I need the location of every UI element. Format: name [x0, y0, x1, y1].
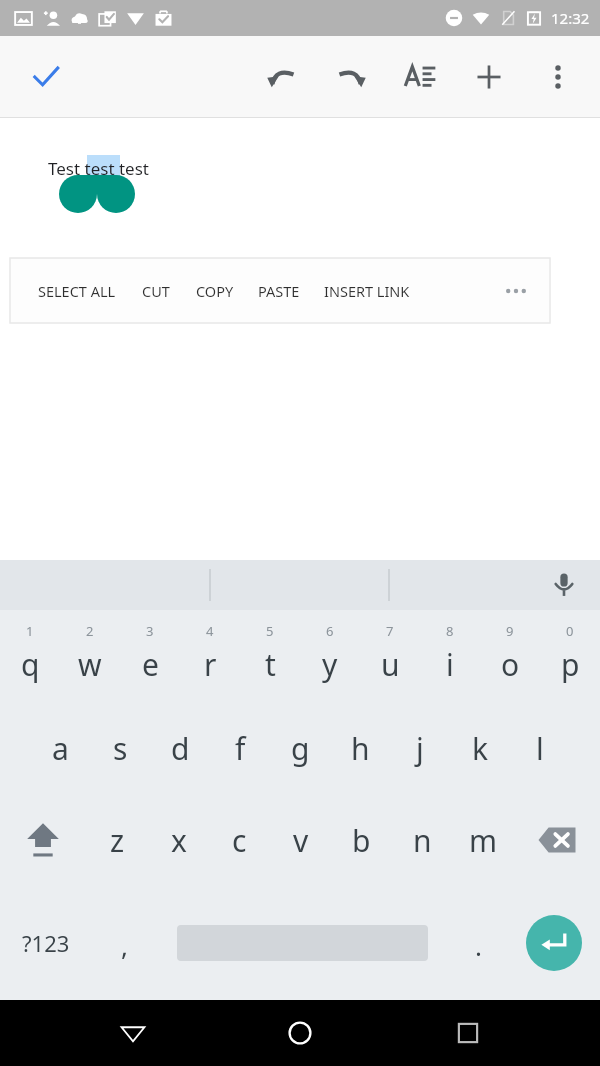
staticText: ?123 — [22, 928, 70, 958]
staticText: 5 — [266, 622, 274, 640]
staticText: s — [113, 728, 128, 769]
button[interactable]: z — [86, 794, 148, 886]
staticText: o — [501, 644, 520, 685]
button[interactable]: COPY — [190, 258, 240, 323]
staticText: SELECT ALL — [38, 281, 116, 301]
button[interactable]: 1 — [0, 610, 60, 702]
button[interactable]: k — [450, 702, 510, 794]
staticText: 9 — [506, 622, 514, 640]
button[interactable]: n — [392, 794, 453, 886]
staticText: i — [446, 644, 454, 685]
staticText: COPY — [196, 281, 234, 301]
staticText: l — [536, 728, 544, 769]
button[interactable]: Voice input — [542, 563, 586, 607]
staticText: 3 — [146, 622, 154, 640]
button[interactable]: 2 — [60, 610, 120, 702]
button[interactable]: , — [92, 886, 156, 1000]
button[interactable]: Redo — [316, 44, 385, 110]
button[interactable]: s — [90, 702, 150, 794]
staticText: p — [561, 644, 580, 685]
staticText: j — [416, 728, 424, 769]
button[interactable]: 5 — [240, 610, 300, 702]
button[interactable]: d — [150, 702, 210, 794]
staticText: v — [293, 820, 309, 861]
staticText: 1 — [26, 622, 34, 640]
staticText: z — [110, 820, 125, 861]
staticText: PASTE — [258, 281, 300, 301]
button[interactable]: Undo — [247, 44, 316, 110]
button[interactable]: g — [270, 702, 330, 794]
staticText: 2 — [86, 622, 94, 640]
staticText: u — [381, 644, 400, 685]
staticText: 7 — [386, 622, 394, 640]
staticText: n — [413, 820, 432, 861]
button[interactable]: 7 — [360, 610, 420, 702]
button[interactable]: More options — [523, 44, 592, 110]
button[interactable]: 9 — [480, 610, 540, 702]
staticText: q — [21, 644, 40, 685]
staticText: t — [265, 644, 276, 685]
staticText: 12:32 — [551, 8, 590, 28]
button[interactable]: Back — [98, 1000, 168, 1066]
button[interactable]: . — [448, 886, 508, 1000]
button[interactable]: CUT — [136, 258, 176, 323]
button[interactable]: 8 — [420, 610, 480, 702]
button[interactable]: ?123 — [0, 886, 92, 1000]
staticText: . — [475, 928, 482, 963]
button[interactable]: Backspace — [514, 794, 600, 886]
staticText: f — [235, 728, 246, 769]
button[interactable]: h — [330, 702, 390, 794]
button[interactable] — [156, 886, 448, 1000]
button[interactable]: Recents — [433, 1000, 503, 1066]
button[interactable]: x — [148, 794, 209, 886]
staticText: y — [322, 644, 338, 685]
button[interactable]: l — [510, 702, 570, 794]
button[interactable]: 0 — [540, 610, 600, 702]
button[interactable]: SELECT ALL — [32, 258, 122, 323]
button[interactable]: INSERT LINK — [318, 258, 416, 323]
button[interactable]: Insert — [454, 44, 523, 110]
button[interactable]: Enter — [508, 886, 600, 1000]
staticText: c — [232, 820, 247, 861]
staticText: CUT — [142, 281, 170, 301]
staticText: g — [291, 728, 310, 769]
staticText: INSERT LINK — [324, 281, 410, 301]
staticText: e — [142, 644, 159, 685]
staticText: b — [352, 820, 371, 861]
staticText: , — [121, 928, 128, 963]
staticText: x — [171, 820, 187, 861]
button[interactable]: a — [30, 702, 90, 794]
button[interactable]: b — [331, 794, 392, 886]
staticText: m — [469, 820, 498, 861]
staticText: d — [171, 728, 190, 769]
button[interactable]: Shift — [0, 794, 86, 886]
staticText: 0 — [566, 622, 574, 640]
staticText: w — [78, 644, 102, 685]
button[interactable]: f — [210, 702, 270, 794]
button[interactable]: j — [390, 702, 450, 794]
button[interactable]: Done — [22, 53, 70, 101]
button[interactable]: 4 — [180, 610, 240, 702]
staticText: 8 — [446, 622, 454, 640]
staticText: Test test test — [48, 157, 149, 180]
staticText: h — [351, 728, 370, 769]
button[interactable]: Home — [265, 1000, 335, 1066]
staticText: k — [472, 728, 489, 769]
button[interactable]: Formatting — [385, 44, 454, 110]
button[interactable]: 3 — [120, 610, 180, 702]
staticText: r — [204, 644, 217, 685]
button[interactable]: m — [453, 794, 514, 886]
button[interactable]: PASTE — [252, 258, 306, 323]
button[interactable]: 6 — [300, 610, 360, 702]
staticText: a — [52, 728, 69, 769]
staticText: 6 — [326, 622, 334, 640]
staticText: 4 — [206, 622, 214, 640]
button[interactable]: More — [494, 269, 538, 313]
button[interactable]: c — [209, 794, 270, 886]
button[interactable]: v — [270, 794, 331, 886]
